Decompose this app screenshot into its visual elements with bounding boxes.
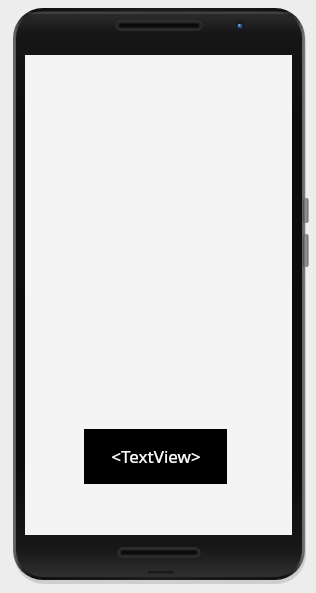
button[interactable]: <TextView> (84, 429, 227, 484)
staticText: <TextView> (111, 445, 201, 468)
